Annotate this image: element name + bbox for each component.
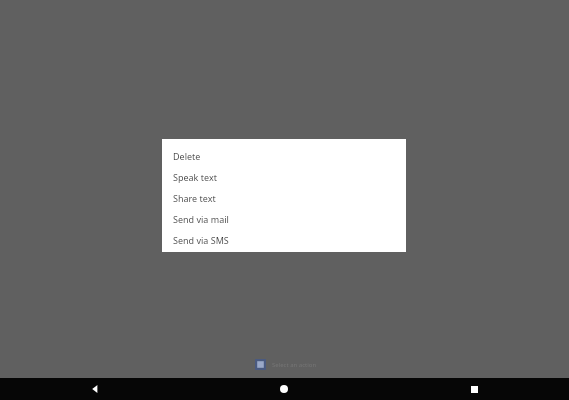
button[interactable]: Home bbox=[189, 378, 379, 400]
button[interactable]: Back bbox=[0, 378, 189, 400]
button[interactable]: Share text bbox=[162, 187, 406, 208]
staticText: Send via mail bbox=[173, 213, 229, 225]
staticText: Share text bbox=[173, 192, 216, 204]
button[interactable]: Send via mail bbox=[162, 208, 406, 229]
staticText: Select an action bbox=[272, 361, 317, 369]
button[interactable]: Recent apps bbox=[379, 378, 569, 400]
staticText: Delete bbox=[173, 150, 201, 162]
staticText: Speak text bbox=[173, 171, 217, 183]
button[interactable]: Send via SMS bbox=[162, 229, 406, 250]
staticText: Send via SMS bbox=[173, 234, 229, 246]
button[interactable]: Speak text bbox=[162, 166, 406, 187]
button[interactable]: Delete bbox=[162, 145, 406, 166]
